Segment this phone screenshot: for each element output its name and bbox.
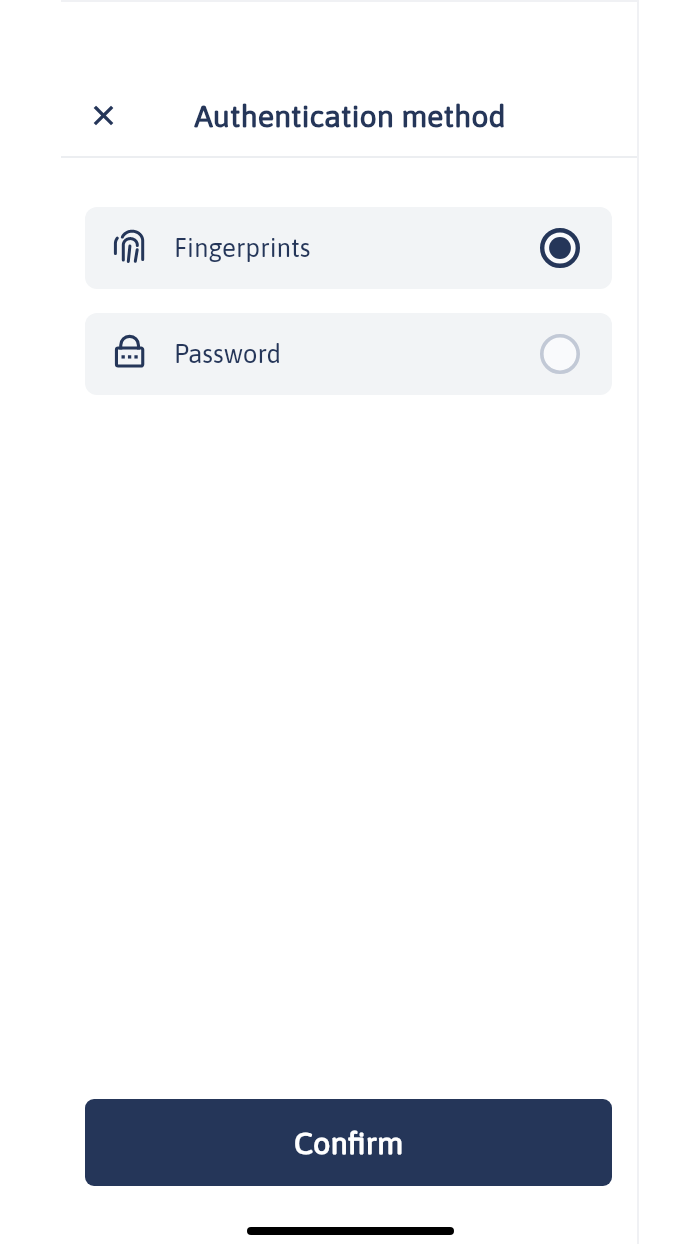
button[interactable]: Close xyxy=(79,91,127,139)
staticText: Confirm xyxy=(294,1125,403,1160)
staticText: Fingerprints xyxy=(174,233,311,263)
button[interactable]: Password xyxy=(85,313,612,395)
button[interactable]: Fingerprints xyxy=(85,207,612,289)
button[interactable]: Confirm xyxy=(85,1099,612,1186)
staticText: Authentication method xyxy=(194,99,506,134)
staticText: Password xyxy=(174,339,282,369)
